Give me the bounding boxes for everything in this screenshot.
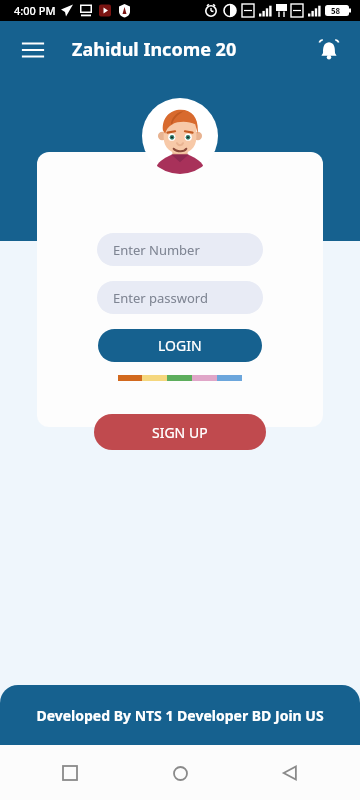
button[interactable]: Recent apps [50, 753, 90, 793]
button[interactable]: SIGN UP [94, 414, 266, 450]
button[interactable]: LOGIN [98, 329, 262, 362]
button[interactable]: Enter password [97, 281, 263, 314]
button[interactable]: Enter Number [97, 233, 263, 266]
staticText: LOGIN [158, 336, 202, 355]
staticText: Enter password [113, 289, 208, 307]
button[interactable]: Home [160, 753, 200, 793]
staticText: 58 [331, 5, 341, 16]
button[interactable]: Back [270, 753, 310, 793]
staticText: Enter Number [113, 241, 200, 259]
button[interactable]: Open navigation menu [12, 29, 54, 71]
button[interactable]: Developed By NTS 1 Developer BD Join US [0, 685, 360, 745]
staticText: 4:00 PM [14, 3, 56, 18]
button[interactable]: Notifications [308, 29, 350, 71]
staticText: SIGN UP [152, 423, 208, 442]
staticText: Developed By NTS 1 Developer BD Join US [36, 706, 324, 725]
staticText: Zahidul Income 20 [72, 37, 237, 62]
